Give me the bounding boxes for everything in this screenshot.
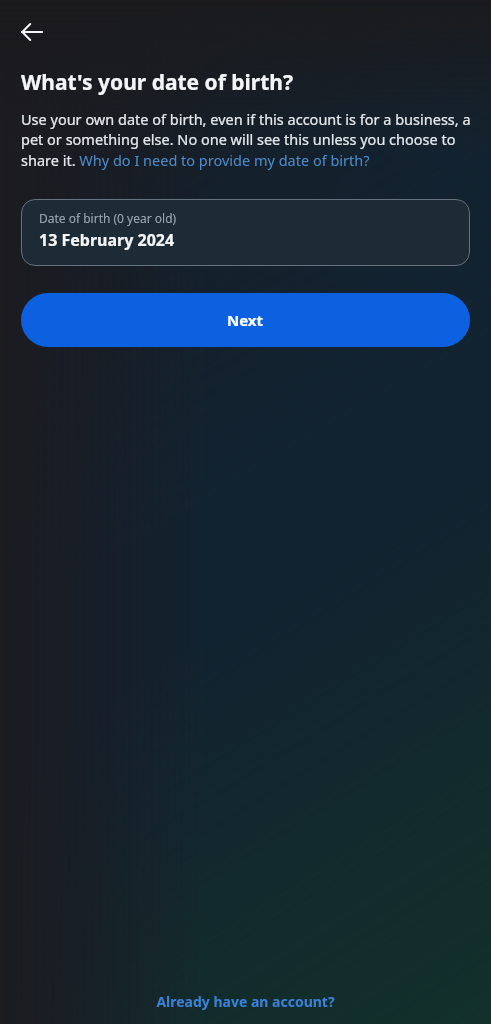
button[interactable]: Date of birth (0 year old) (21, 199, 470, 266)
button[interactable]: Already have an account? (0, 976, 491, 1024)
staticText: Next (227, 310, 264, 330)
staticText: Use your own date of birth, even if this… (21, 109, 471, 171)
button[interactable]: Back (8, 8, 56, 56)
staticText: Date of birth (0 year old) (39, 210, 177, 226)
staticText: What's your date of birth? (21, 68, 294, 97)
button[interactable]: Next (21, 293, 470, 347)
staticText: 13 February 2024 (39, 229, 175, 251)
staticText: Already have an account? (156, 992, 335, 1011)
button[interactable]: Use your own date of birth, even if this… (21, 109, 471, 171)
